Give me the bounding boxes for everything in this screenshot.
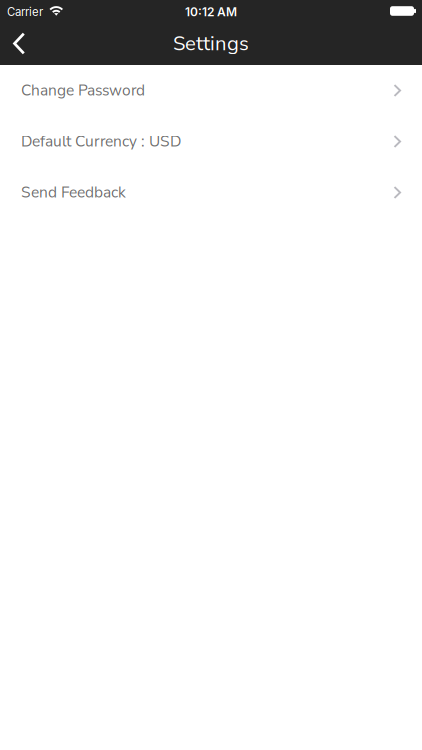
staticText: Carrier [7,5,43,19]
button[interactable]: Default Currency : USD [0,116,422,167]
staticText: 10:12 AM [185,5,237,19]
button[interactable]: Change Password [0,65,422,116]
button[interactable]: Send Feedback [0,167,422,218]
button[interactable]: Back [0,22,39,65]
staticText: Send Feedback [21,182,126,203]
staticText: Default Currency : USD [21,131,181,152]
staticText: Settings [173,30,249,57]
staticText: Change Password [21,80,145,101]
